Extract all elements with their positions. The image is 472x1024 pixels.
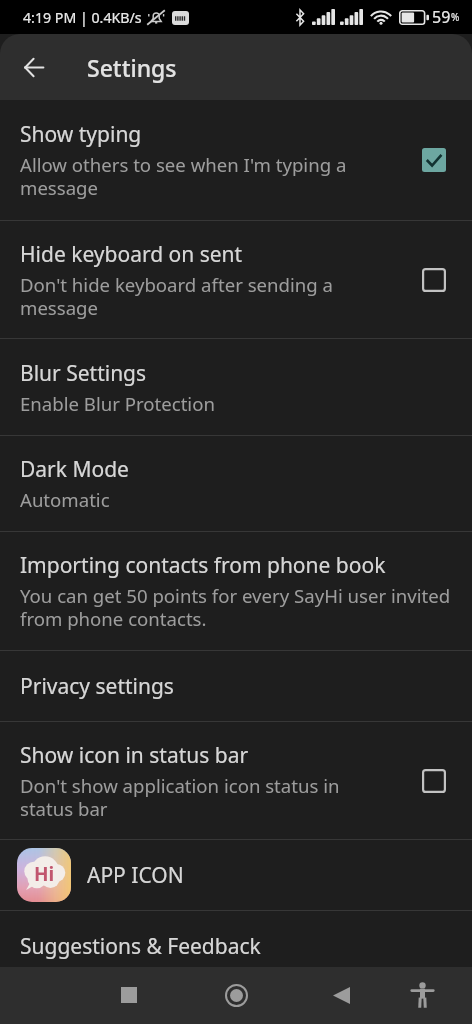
button[interactable]: Unchecked (422, 268, 446, 292)
button[interactable]: Blur Settings (0, 339, 472, 435)
staticText: Automatic (20, 487, 110, 512)
button[interactable]: Home (212, 971, 260, 1019)
button[interactable]: Back (317, 971, 365, 1019)
staticText: Blur Settings (20, 359, 147, 388)
staticText: % (451, 10, 460, 24)
button[interactable]: Show typing (0, 100, 472, 220)
staticText: Settings (87, 52, 177, 83)
staticText: Don't show application icon status in st… (20, 773, 372, 821)
staticText: Importing contacts from phone book (20, 551, 386, 580)
staticText: You can get 50 points for every SayHi us… (20, 583, 454, 631)
staticText: Show icon in status bar (20, 741, 249, 770)
button[interactable]: Unchecked (422, 769, 446, 793)
staticText: APP ICON (87, 861, 184, 890)
staticText: Hide keyboard on sent (20, 240, 243, 269)
staticText: Dark Mode (20, 455, 129, 484)
staticText: 59 (432, 6, 451, 28)
staticText: Enable Blur Protection (20, 391, 215, 416)
button[interactable]: Show icon in status bar (0, 722, 472, 839)
button[interactable]: Hide keyboard on sent (0, 221, 472, 338)
button[interactable]: Back (10, 43, 58, 91)
button[interactable]: Privacy settings (0, 651, 472, 721)
staticText: 4:19 PM | 0.4KB/s (23, 8, 142, 27)
button[interactable]: Accessibility (398, 971, 446, 1019)
button[interactable]: Suggestions & Feedback (0, 911, 472, 967)
staticText: Allow others to see when I'm typing a me… (20, 152, 372, 200)
staticText: Don't hide keyboard after sending a mess… (20, 272, 372, 320)
button[interactable]: Importing contacts from phone book (0, 532, 472, 650)
button[interactable]: Dark Mode (0, 436, 472, 531)
button[interactable]: Recent apps (105, 971, 153, 1019)
staticText: Hi (34, 861, 55, 887)
staticText: Privacy settings (20, 672, 174, 701)
staticText: Show typing (20, 120, 142, 149)
button[interactable]: Hi (0, 840, 472, 910)
staticText: Suggestions & Feedback (20, 932, 261, 961)
button[interactable]: Checked (422, 148, 446, 172)
